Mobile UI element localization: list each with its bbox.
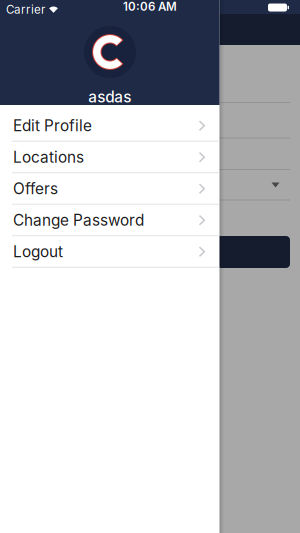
staticText: asdas: [88, 88, 131, 106]
button[interactable]: Locations: [0, 142, 219, 173]
staticText: Change Password: [13, 211, 144, 229]
staticText: Locations: [13, 148, 84, 166]
staticText: Logout: [13, 242, 63, 261]
button[interactable]: Change Password: [0, 205, 219, 236]
button[interactable]: Offers: [0, 173, 219, 205]
staticText: Carrier: [6, 2, 45, 16]
button[interactable]: Profile: [84, 26, 136, 78]
staticText: Edit Profile: [13, 116, 92, 135]
staticText: Offers: [13, 179, 58, 198]
button[interactable]: Edit Profile: [0, 110, 219, 142]
button[interactable]: Logout: [0, 236, 219, 268]
staticText: 10:06 AM: [123, 0, 177, 13]
